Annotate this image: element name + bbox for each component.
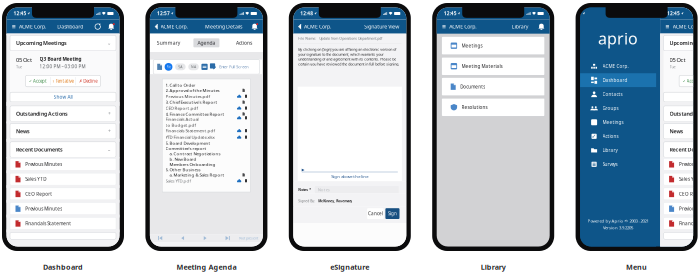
staticText: ACME Corp. (603, 63, 629, 69)
button[interactable]: Meetings (442, 37, 545, 55)
button[interactable]: Previous Minutes.pdf (166, 93, 247, 99)
button[interactable]: Documents (442, 78, 545, 96)
button[interactable]: Sign (385, 208, 399, 219)
staticText: 05 Oct (670, 56, 686, 64)
button[interactable]: Show All (664, 92, 700, 102)
button[interactable]: Upcoming Meetings (664, 35, 700, 51)
button[interactable]: Show All (10, 92, 116, 102)
button[interactable]: Refresh (94, 23, 101, 30)
staticText: Documents (460, 84, 485, 90)
button[interactable]: Navigate (194, 234, 216, 242)
button[interactable]: Financials Statement (664, 217, 700, 229)
staticText: Dashboard (603, 77, 628, 83)
button[interactable]: Summary (150, 34, 188, 52)
staticText: ✓ (682, 79, 685, 83)
button[interactable]: Resolutions (442, 98, 545, 116)
button[interactable]: ACME Corp. (155, 23, 187, 30)
button[interactable]: Recent Documents (664, 142, 700, 157)
button[interactable]: Notifications (538, 23, 545, 30)
button[interactable]: ✓ (679, 75, 700, 87)
button[interactable]: News (10, 123, 116, 139)
button[interactable]: ✓ (580, 129, 656, 143)
button[interactable]: Previous Minutes (664, 158, 700, 170)
button[interactable]: ✗ (76, 75, 100, 87)
staticText: Tue (670, 64, 676, 69)
button[interactable]: ACME Corp. (12, 23, 46, 30)
button[interactable]: ✓ (26, 75, 50, 87)
button[interactable]: Surveys (580, 157, 656, 171)
button[interactable]: CEO Report (10, 188, 116, 200)
button[interactable]: Sales YTD (664, 173, 700, 185)
button[interactable]: ACME Corp. (299, 23, 331, 30)
button[interactable]: News (664, 123, 700, 139)
button[interactable]: Financials Statement.pdf (166, 127, 247, 134)
button[interactable]: Cancel (367, 208, 384, 219)
staticText: ⌄ (107, 40, 111, 46)
button[interactable]: Library (580, 143, 656, 157)
staticText: Powered by Aprio © 2003 - 2021 (588, 218, 649, 224)
button[interactable]: Groups (580, 101, 656, 115)
button[interactable]: Navigate (171, 234, 194, 242)
button[interactable]: CEO Report.pdf (166, 105, 247, 111)
button[interactable]: ? (51, 75, 75, 87)
button[interactable]: Dashboard (580, 73, 656, 87)
button[interactable]: Financials Actual (166, 117, 247, 127)
button[interactable]: Recent Documents (10, 142, 116, 157)
button[interactable]: Notifications (251, 23, 258, 30)
staticText: a. Contract Negotiations (166, 151, 221, 157)
staticText: Q3 Board Meeting (39, 56, 81, 62)
staticText: Accept (33, 78, 47, 84)
staticText: 12:45 (667, 10, 680, 17)
staticText: Meetings (462, 43, 483, 49)
button[interactable]: Outstanding Actions (10, 106, 116, 121)
button[interactable]: ACME Corp. (442, 23, 476, 30)
staticText: ACME Corp. (449, 23, 476, 30)
button[interactable]: Previous Minutes (664, 203, 700, 215)
button[interactable]: Notifications (108, 23, 114, 30)
button[interactable]: Meetings (580, 115, 656, 129)
button[interactable]: Sales YTD (10, 173, 116, 185)
button[interactable]: Navigate (216, 234, 239, 242)
button[interactable]: Upcoming Meetings (10, 35, 116, 51)
staticText: Upcoming Meetings (670, 39, 700, 47)
staticText: Library (512, 23, 529, 30)
staticText: CEO Report.pdf (166, 105, 198, 111)
button[interactable]: ACME Corp. (666, 23, 700, 30)
staticText: Library (603, 147, 618, 153)
button[interactable]: Agenda (188, 34, 225, 52)
staticText: ACME Corp. (19, 23, 46, 30)
staticText: Outstanding Actions (16, 110, 68, 117)
button[interactable]: Financials Statement (10, 217, 116, 229)
button[interactable]: Notes (315, 186, 399, 193)
button[interactable]: Previous Minutes (10, 158, 116, 170)
staticText: 12:45 (569, 10, 582, 17)
staticText: News (670, 127, 684, 135)
button[interactable]: CEO Report (664, 188, 700, 200)
staticText: Members Onboarding (166, 161, 216, 167)
staticText: 1. Call to Order (166, 82, 196, 88)
button[interactable]: ACME Corp. (580, 59, 656, 73)
staticText: Previous Minutes (25, 161, 62, 167)
staticText: News (16, 127, 30, 135)
button[interactable]: YTD Financial Update.xlsx (166, 134, 247, 140)
button[interactable]: Previous Minutes (10, 203, 116, 215)
staticText: Outstanding Actions (670, 110, 700, 117)
button[interactable]: Navigate (149, 234, 171, 242)
button[interactable]: Contacts (580, 87, 656, 101)
button[interactable]: Sales YTD.pdf (166, 177, 247, 184)
button[interactable]: Actions (225, 34, 263, 52)
button[interactable]: Meeting Materials (442, 57, 545, 75)
staticText: YTD Financial Update.xlsx (166, 134, 215, 140)
staticText: Signed By: (298, 199, 318, 203)
staticText: Financials Statement (679, 220, 700, 227)
staticText: ACME Corp. (673, 23, 700, 30)
staticText: McKinney, Rosemary (318, 199, 352, 203)
staticText: 12:45 (13, 10, 26, 17)
staticText: 12:45 (444, 10, 457, 17)
staticText: Dashboard (43, 262, 83, 272)
staticText: ⌄ (107, 147, 111, 152)
staticText: Financials Actual (166, 116, 199, 122)
staticText: Surveys (603, 161, 618, 167)
staticText: 12:00 PM – 03:00 PM (39, 63, 85, 70)
button[interactable]: Outstanding Actions (664, 106, 700, 121)
